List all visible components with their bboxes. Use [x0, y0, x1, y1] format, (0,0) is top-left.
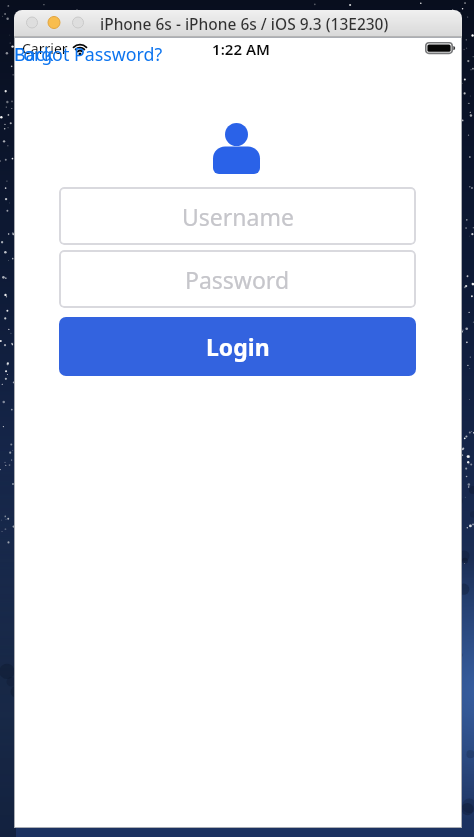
staticText: Forgot Password?	[14, 42, 163, 66]
staticText: Login	[206, 331, 270, 362]
staticText: 1:22 AM	[17, 39, 465, 59]
staticText: Password	[185, 264, 290, 295]
staticText: iPhone 6s - iPhone 6s / iOS 9.3 (13E230)	[100, 13, 389, 34]
staticText: Username	[182, 201, 294, 232]
staticText: Back	[14, 42, 54, 66]
button[interactable]: Forgot Password?	[14, 42, 163, 66]
button[interactable]: Login	[59, 317, 416, 376]
button[interactable]: Username	[59, 187, 416, 245]
staticText: Carrier	[22, 39, 68, 58]
button[interactable]: Password	[59, 250, 416, 308]
